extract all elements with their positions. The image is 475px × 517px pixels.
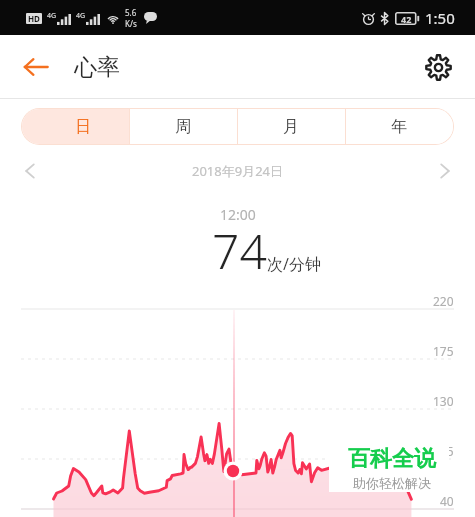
staticText: 周: [175, 117, 191, 137]
button[interactable]: Settings: [416, 45, 460, 89]
staticText: 日: [75, 117, 91, 137]
staticText: 月: [283, 117, 299, 137]
button[interactable]: Next day: [429, 155, 461, 187]
staticText: 85: [440, 443, 454, 459]
staticText: 12:00: [220, 205, 256, 224]
staticText: HD: [28, 13, 40, 24]
staticText: 年: [391, 117, 407, 137]
staticText: 220: [433, 293, 454, 309]
staticText: 心率: [74, 53, 120, 82]
button[interactable]: 周: [129, 109, 237, 144]
staticText: 1:50: [425, 8, 455, 28]
staticText: 74: [212, 218, 267, 283]
staticText: 5.6: [125, 7, 137, 18]
staticText: 助你轻松解决: [353, 475, 431, 491]
staticText: 130: [433, 393, 454, 409]
staticText: 175: [433, 343, 454, 359]
staticText: 次/分钟: [267, 253, 321, 275]
staticText: K/s: [125, 18, 137, 29]
staticText: 2018年9月24日: [46, 162, 429, 180]
staticText: 4G: [47, 11, 57, 21]
staticText: 百科全说: [348, 445, 436, 473]
button[interactable]: 年: [345, 109, 453, 144]
staticText: 42: [401, 13, 412, 25]
button[interactable]: Back: [14, 45, 58, 89]
staticText: 40: [440, 493, 454, 509]
button[interactable]: 月: [237, 109, 345, 144]
button[interactable]: Previous day: [14, 155, 46, 187]
button[interactable]: 日: [22, 109, 129, 144]
staticText: 4G: [76, 11, 86, 21]
